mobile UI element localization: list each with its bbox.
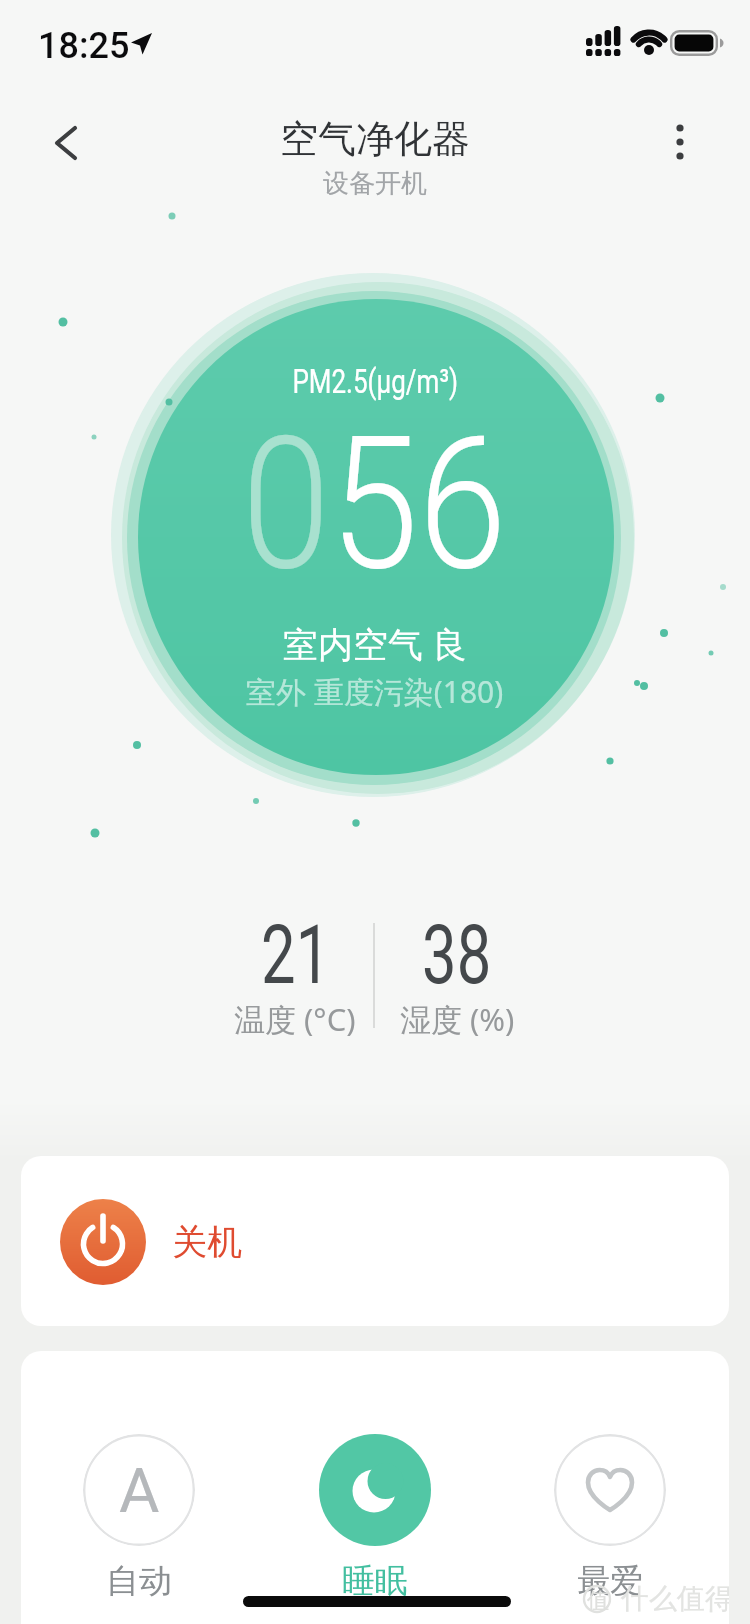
button[interactable]: A [69,1434,209,1614]
staticText: 关机 [172,1220,242,1264]
staticText: 056 [242,396,507,612]
button[interactable] [34,112,96,174]
staticText: 最爱 [577,1560,643,1602]
staticText: A [119,1454,160,1527]
staticText: 自动 [106,1560,172,1602]
staticText: 室内空气 良 [283,620,468,668]
staticText: 什么值得买 [621,1581,729,1616]
staticText: 睡眠 [342,1560,408,1602]
staticText: 38 [422,908,492,1003]
button[interactable]: 睡眠 [305,1434,445,1614]
staticText: 设备开机 [323,167,427,200]
staticText: 温度 (°C) [234,998,356,1040]
staticText: 湿度 (%) [400,998,515,1040]
staticText: 空气净化器 [280,115,470,163]
button[interactable] [650,110,710,174]
staticText: 室外 重度污染(180) [246,671,504,712]
button[interactable]: 关机 [21,1156,729,1326]
staticText: 值 [587,1587,609,1615]
staticText: 21 [261,908,331,1003]
staticText: PM2.5(μg/m³) [292,361,458,401]
staticText: 18:25 [38,25,130,67]
button[interactable]: 最爱 [540,1434,680,1614]
